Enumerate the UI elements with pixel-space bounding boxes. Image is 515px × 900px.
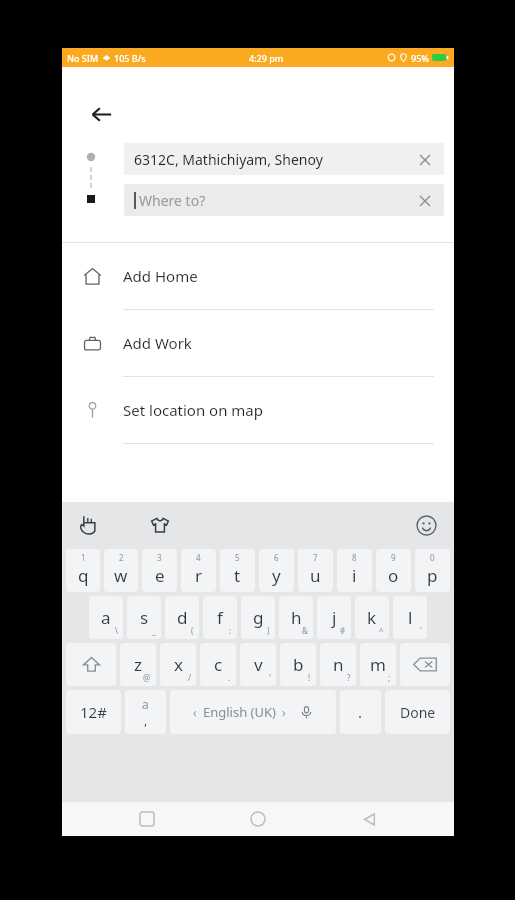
staticText: /	[188, 672, 191, 683]
staticText: f	[217, 606, 223, 629]
staticText: v	[254, 653, 263, 676]
button[interactable]: k	[355, 596, 389, 639]
button[interactable]: Home	[238, 802, 278, 836]
button[interactable]: Where to?	[124, 184, 444, 216]
button[interactable]: b	[280, 643, 316, 686]
staticText: b	[293, 653, 304, 676]
staticText: w	[114, 564, 128, 587]
staticText: n	[333, 653, 344, 676]
button[interactable]: 0	[415, 549, 450, 592]
button[interactable]: Back	[84, 97, 118, 131]
staticText: Where to?	[139, 191, 416, 210]
staticText: 7	[313, 552, 318, 563]
button[interactable]: 6	[259, 549, 294, 592]
staticText: l	[408, 606, 413, 629]
button[interactable]: Shift	[66, 643, 116, 686]
staticText: c	[214, 653, 223, 676]
other: Work	[83, 334, 102, 353]
staticText: '	[420, 625, 422, 636]
staticText: Set location on map	[123, 400, 264, 420]
staticText: i	[352, 564, 357, 587]
staticText: 8	[352, 552, 357, 563]
button[interactable]: Home	[62, 243, 454, 310]
button[interactable]: a	[125, 690, 166, 734]
button[interactable]: Gesture typing	[74, 509, 106, 541]
button[interactable]: 5	[220, 549, 255, 592]
button[interactable]: Back	[349, 802, 389, 836]
staticText: 12#	[80, 702, 107, 722]
button[interactable]: a	[89, 596, 123, 639]
staticText: o	[388, 564, 399, 587]
staticText: No SIM	[67, 52, 99, 64]
button[interactable]: Recents	[127, 802, 167, 836]
button[interactable]: Emoji	[410, 509, 442, 541]
staticText: p	[427, 564, 438, 587]
button[interactable]: v	[240, 643, 276, 686]
staticText: Done	[400, 703, 436, 722]
staticText: 1	[81, 552, 86, 563]
other: Set location on map	[83, 401, 102, 420]
staticText: g	[253, 606, 264, 629]
button[interactable]: f	[203, 596, 237, 639]
button[interactable]: g	[241, 596, 275, 639]
staticText: t	[234, 564, 241, 587]
staticText: English (UK)	[203, 703, 276, 721]
staticText: 4	[196, 552, 201, 563]
button[interactable]: 8	[337, 549, 372, 592]
staticText: Add Work	[123, 333, 192, 353]
button[interactable]: n	[320, 643, 356, 686]
button[interactable]: Backspace	[400, 643, 450, 686]
button[interactable]: Space, English (UK)	[170, 690, 336, 734]
button[interactable]: 12#	[66, 690, 121, 734]
button[interactable]: 6312C, Mathichiyam, Shenoy	[124, 143, 444, 175]
button[interactable]: d	[165, 596, 199, 639]
staticText: y	[272, 564, 281, 587]
staticText: m	[370, 653, 386, 676]
staticText: 95%	[411, 52, 429, 64]
button[interactable]: s	[127, 596, 161, 639]
staticText: )	[267, 625, 270, 636]
staticText: .	[228, 672, 231, 683]
button[interactable]: 1	[66, 549, 100, 592]
staticText: h	[291, 606, 302, 629]
button[interactable]: Clear	[416, 151, 434, 169]
button[interactable]: Work	[62, 310, 454, 377]
button[interactable]: .	[340, 690, 381, 734]
staticText: s	[140, 606, 149, 629]
staticText: ›	[282, 704, 286, 720]
button[interactable]: 2	[104, 549, 138, 592]
staticText: 0	[430, 552, 435, 563]
staticText: (	[191, 625, 194, 636]
button[interactable]: l	[393, 596, 427, 639]
button[interactable]: m	[360, 643, 396, 686]
staticText: j	[332, 606, 337, 629]
staticText: ,	[144, 712, 148, 728]
staticText: r	[195, 564, 203, 587]
staticText: 4:29 pm	[249, 52, 284, 64]
button[interactable]: 7	[298, 549, 333, 592]
button[interactable]: Clear	[416, 192, 434, 210]
staticText: a	[142, 696, 149, 712]
button[interactable]: Set location on map	[62, 377, 454, 444]
button[interactable]: Themes	[144, 509, 176, 541]
staticText: 105 B/s	[114, 52, 146, 64]
button[interactable]: j	[317, 596, 351, 639]
button[interactable]: h	[279, 596, 313, 639]
staticText: '	[269, 672, 271, 683]
button[interactable]: c	[200, 643, 236, 686]
button[interactable]: 4	[181, 549, 216, 592]
staticText: a	[101, 606, 111, 629]
button[interactable]: 3	[142, 549, 177, 592]
button[interactable]: 9	[376, 549, 411, 592]
button[interactable]: z	[120, 643, 156, 686]
button[interactable]: x	[160, 643, 196, 686]
staticText: 6	[274, 552, 279, 563]
staticText: #	[340, 625, 346, 636]
staticText: x	[174, 653, 183, 676]
staticText: 3	[157, 552, 162, 563]
staticText: 9	[391, 552, 396, 563]
button[interactable]: Done	[385, 690, 450, 734]
staticText: .	[358, 702, 363, 722]
staticText: 2	[119, 552, 124, 563]
staticText: d	[177, 606, 188, 629]
